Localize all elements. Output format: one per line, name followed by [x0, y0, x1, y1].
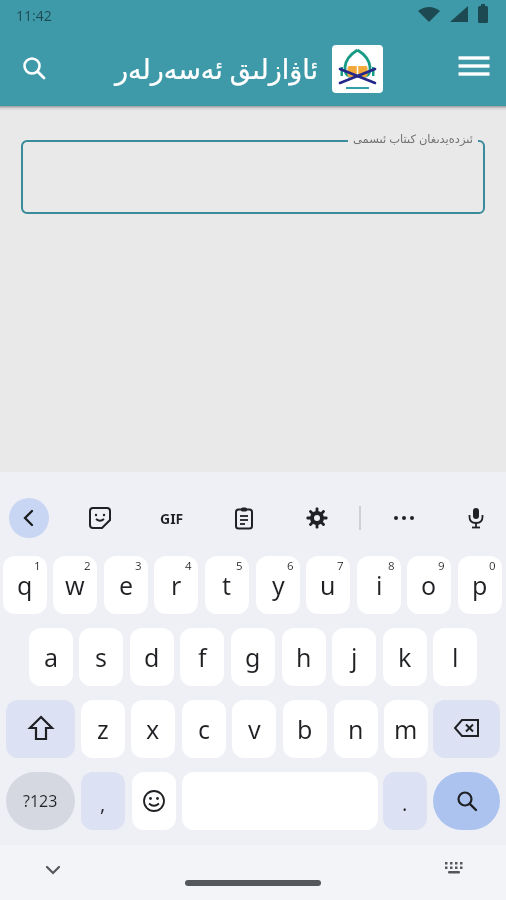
- staticText: w: [65, 568, 85, 602]
- staticText: h: [296, 640, 312, 674]
- staticText: o: [421, 568, 437, 602]
- staticText: d: [144, 640, 160, 674]
- button[interactable]: [132, 772, 176, 830]
- button[interactable]: w: [53, 556, 97, 614]
- button[interactable]: [454, 48, 494, 88]
- staticText: y: [272, 568, 285, 602]
- button[interactable]: g: [231, 628, 275, 686]
- staticText: g: [245, 640, 261, 674]
- staticText: ئاۋازلىق ئەسەرلەر: [114, 50, 318, 87]
- staticText: b: [297, 712, 313, 746]
- button[interactable]: ,: [81, 772, 125, 830]
- staticText: 7: [337, 558, 344, 574]
- staticText: 11:42: [16, 6, 52, 25]
- staticText: x: [146, 712, 160, 746]
- staticText: z: [97, 712, 109, 746]
- staticText: f: [198, 640, 207, 674]
- button[interactable]: y: [256, 556, 300, 614]
- staticText: 5: [236, 558, 243, 574]
- button[interactable]: t: [205, 556, 249, 614]
- button[interactable]: [384, 498, 424, 538]
- button[interactable]: v: [232, 700, 276, 758]
- staticText: r: [171, 568, 182, 602]
- staticText: t: [222, 568, 232, 602]
- button[interactable]: [14, 48, 54, 88]
- button[interactable]: f: [180, 628, 224, 686]
- button[interactable]: x: [131, 700, 175, 758]
- button[interactable]: j: [332, 628, 376, 686]
- staticText: 3: [135, 558, 142, 574]
- button[interactable]: [433, 700, 500, 758]
- button[interactable]: d: [130, 628, 174, 686]
- button[interactable]: [37, 854, 69, 886]
- staticText: j: [351, 640, 358, 674]
- staticText: GIF: [160, 509, 184, 528]
- button[interactable]: z: [81, 700, 125, 758]
- staticText: 6: [287, 558, 294, 574]
- button[interactable]: q: [3, 556, 47, 614]
- button[interactable]: [9, 498, 49, 538]
- staticText: 8: [388, 558, 395, 574]
- staticText: k: [398, 640, 412, 674]
- staticText: ?123: [23, 790, 58, 812]
- button[interactable]: b: [283, 700, 327, 758]
- button[interactable]: e: [104, 556, 148, 614]
- button[interactable]: u: [306, 556, 350, 614]
- staticText: m: [394, 712, 418, 746]
- staticText: s: [95, 640, 107, 674]
- button[interactable]: p: [458, 556, 502, 614]
- staticText: q: [17, 568, 33, 602]
- button[interactable]: m: [384, 700, 428, 758]
- button[interactable]: [80, 498, 120, 538]
- button[interactable]: [297, 498, 337, 538]
- button[interactable]: .: [383, 772, 427, 830]
- button[interactable]: [438, 854, 470, 886]
- staticText: c: [198, 712, 211, 746]
- button[interactable]: i: [357, 556, 401, 614]
- staticText: ,: [100, 790, 106, 817]
- button[interactable]: n: [334, 700, 378, 758]
- staticText: i: [376, 568, 383, 602]
- staticText: 9: [438, 558, 445, 574]
- button[interactable]: r: [154, 556, 198, 614]
- button[interactable]: [456, 498, 496, 538]
- button[interactable]: l: [433, 628, 477, 686]
- button[interactable]: [6, 700, 75, 758]
- button[interactable]: o: [407, 556, 451, 614]
- button[interactable]: [433, 772, 500, 830]
- button[interactable]: ?123: [6, 772, 75, 830]
- staticText: l: [452, 640, 459, 674]
- staticText: a: [44, 640, 59, 674]
- staticText: ئىزدەيدىغان كىتاب ئىسمى: [353, 131, 473, 147]
- button[interactable]: c: [182, 700, 226, 758]
- button[interactable]: [224, 498, 264, 538]
- staticText: .: [402, 790, 408, 817]
- button[interactable]: [332, 45, 383, 93]
- button[interactable]: a: [29, 628, 73, 686]
- button[interactable]: s: [79, 628, 123, 686]
- staticText: e: [119, 568, 134, 602]
- staticText: n: [348, 712, 364, 746]
- button[interactable]: [21, 140, 485, 214]
- staticText: u: [320, 568, 336, 602]
- staticText: p: [472, 568, 488, 602]
- button[interactable]: GIF: [152, 498, 192, 538]
- button[interactable]: k: [383, 628, 427, 686]
- staticText: 2: [84, 558, 91, 574]
- staticText: 1: [34, 558, 41, 574]
- staticText: 0: [489, 558, 496, 574]
- staticText: v: [248, 712, 261, 746]
- button[interactable]: h: [282, 628, 326, 686]
- staticText: 4: [185, 558, 192, 574]
